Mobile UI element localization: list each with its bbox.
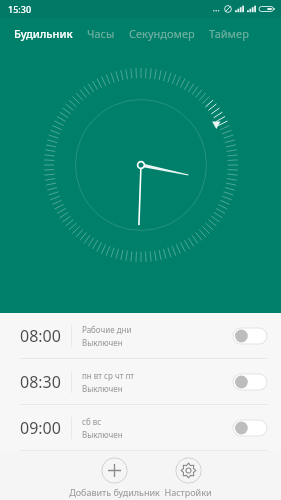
button[interactable]: Секундомер: [129, 26, 195, 41]
staticText: Выключен: [82, 383, 123, 394]
button[interactable]: Таймер: [209, 26, 249, 41]
button[interactable]: Настройки: [164, 451, 212, 498]
staticText: 08:00: [20, 325, 61, 347]
staticText: Рабочие дни: [82, 324, 132, 335]
staticText: пн вт ср чт пт: [82, 370, 135, 381]
button[interactable]: Включить будильник: [233, 374, 267, 390]
staticText: Выключен: [82, 337, 123, 348]
button[interactable]: Включить будильник: [233, 328, 267, 344]
button[interactable]: Включить будильник: [233, 420, 267, 436]
staticText: Добавить будильник: [69, 486, 160, 498]
staticText: Выключен: [82, 429, 123, 440]
button[interactable]: 08:00: [0, 313, 281, 358]
button[interactable]: Добавить будильник: [69, 451, 160, 498]
staticText: 09:00: [20, 417, 61, 439]
button[interactable]: Часы: [87, 26, 115, 41]
staticText: Часы: [87, 26, 115, 41]
staticText: Настройки: [164, 486, 212, 498]
staticText: Таймер: [209, 26, 249, 41]
staticText: 08:30: [20, 371, 61, 393]
other: Добавить будильник: [101, 457, 128, 484]
staticText: сб вс: [82, 416, 102, 427]
staticText: Секундомер: [129, 26, 195, 41]
button[interactable]: 09:00: [0, 405, 281, 450]
button[interactable]: 08:30: [0, 359, 281, 404]
button[interactable]: Будильник: [14, 26, 73, 41]
other: Настройки: [175, 457, 202, 484]
staticText: Будильник: [14, 26, 73, 41]
staticText: 15:30: [8, 3, 32, 15]
